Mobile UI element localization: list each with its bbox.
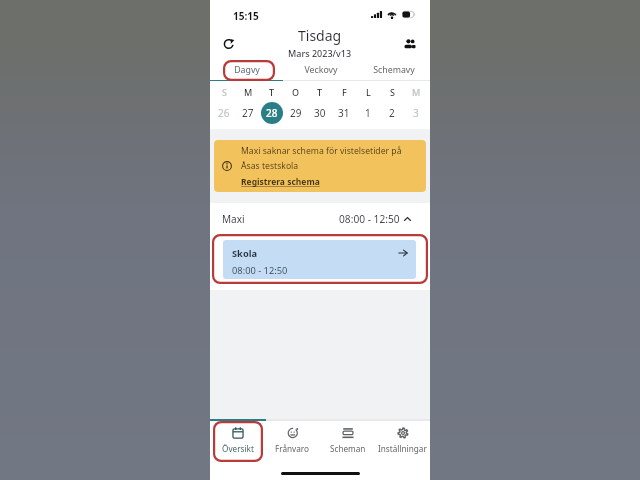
staticText: O xyxy=(292,86,300,96)
button[interactable]: Maxi xyxy=(210,203,430,240)
button[interactable]: 27 xyxy=(237,102,259,124)
staticText: 29 xyxy=(290,106,302,120)
staticText: Översikt xyxy=(222,443,254,454)
staticText: 28 xyxy=(266,106,278,120)
staticText: Dagvy xyxy=(234,64,260,76)
button[interactable]: 31 xyxy=(333,102,355,124)
staticText: 08:00 - 12:50 xyxy=(339,212,400,226)
button[interactable]: Contacts xyxy=(398,32,421,55)
staticText: 26 xyxy=(218,106,230,120)
button[interactable]: Skola xyxy=(223,240,416,279)
staticText: M xyxy=(412,86,421,96)
staticText: Maxi xyxy=(222,212,245,226)
button[interactable]: Registrera schema xyxy=(241,176,320,188)
staticText: F xyxy=(342,86,347,96)
staticText: 30 xyxy=(314,106,326,120)
staticText: T xyxy=(317,86,323,96)
staticText: 31 xyxy=(338,106,350,120)
button[interactable]: 2 xyxy=(381,102,403,124)
button[interactable]: Översikt xyxy=(210,421,265,463)
staticText: S xyxy=(222,86,227,96)
staticText: 15:15 xyxy=(233,9,259,23)
button[interactable]: 3 xyxy=(405,102,427,124)
staticText: Inställningar xyxy=(378,443,427,454)
button[interactable]: Inställningar xyxy=(375,421,430,463)
button[interactable]: Frånvaro xyxy=(265,421,320,463)
staticText: 2 xyxy=(389,106,395,120)
button[interactable]: Veckovy xyxy=(284,60,357,80)
staticText: Veckovy xyxy=(304,64,338,76)
button[interactable]: 28 xyxy=(261,102,283,124)
staticText: Mars 2023/v13 xyxy=(288,47,352,58)
staticText: 3 xyxy=(413,106,419,120)
staticText: Maxi saknar schema för vistelsetider på xyxy=(241,145,402,157)
button[interactable]: 26 xyxy=(213,102,235,124)
button[interactable]: Refresh xyxy=(218,32,241,55)
button[interactable]: Dagvy xyxy=(210,60,284,80)
staticText: Scheman xyxy=(330,443,366,454)
button[interactable]: Scheman xyxy=(320,421,375,463)
staticText: 1 xyxy=(365,106,371,120)
staticText: T xyxy=(269,86,275,96)
button[interactable]: Maxi saknar schema för vistelsetider på xyxy=(214,140,426,192)
staticText: 08:00 - 12:50 xyxy=(232,264,288,277)
staticText: Åsas testskola xyxy=(241,160,299,172)
button[interactable]: 30 xyxy=(309,102,331,124)
staticText: M xyxy=(244,86,253,96)
staticText: Schemavy xyxy=(373,64,415,76)
staticText: 27 xyxy=(242,106,254,120)
staticText: L xyxy=(366,86,371,96)
staticText: S xyxy=(390,86,395,96)
staticText: Skola xyxy=(232,247,258,260)
button[interactable]: 29 xyxy=(285,102,307,124)
staticText: Frånvaro xyxy=(275,443,310,454)
staticText: Tisdag xyxy=(298,26,342,45)
button[interactable]: Schemavy xyxy=(357,60,430,80)
button[interactable]: 1 xyxy=(357,102,379,124)
